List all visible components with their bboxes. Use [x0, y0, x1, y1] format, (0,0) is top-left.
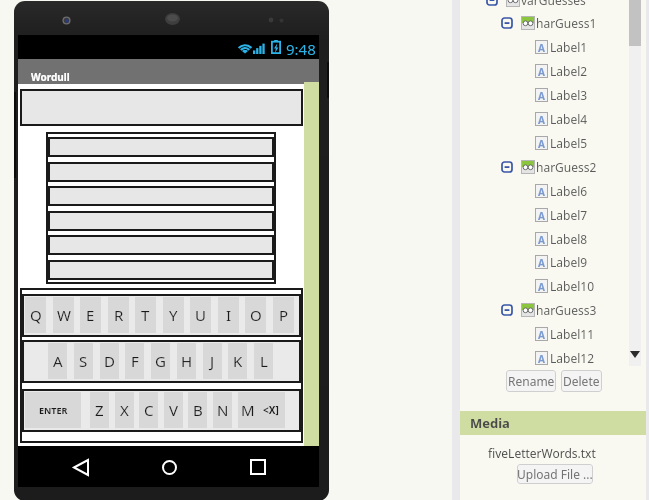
- staticText: Label4: [550, 111, 588, 127]
- button[interactable]: [511, 132, 649, 154]
- button[interactable]: [511, 60, 649, 82]
- staticText: B: [193, 400, 203, 420]
- staticText: R: [114, 305, 124, 325]
- button[interactable]: [497, 12, 637, 34]
- button[interactable]: [497, 299, 637, 321]
- staticText: A: [538, 328, 545, 340]
- button[interactable]: [511, 180, 649, 202]
- staticText: V: [169, 400, 179, 420]
- staticText: S: [79, 351, 88, 371]
- staticText: <X]: [263, 403, 279, 417]
- button[interactable]: F: [125, 343, 144, 379]
- staticText: harGuess1: [536, 15, 597, 31]
- button[interactable]: ENTER: [25, 392, 81, 428]
- button[interactable]: C: [139, 392, 158, 428]
- button[interactable]: [511, 204, 649, 226]
- staticText: W: [57, 305, 71, 325]
- staticText: A: [538, 209, 545, 221]
- staticText: A: [53, 351, 63, 371]
- staticText: Label9: [550, 254, 588, 270]
- button[interactable]: O: [245, 297, 266, 333]
- staticText: harGuess2: [536, 159, 597, 175]
- button[interactable]: I: [218, 297, 239, 333]
- staticText: K: [233, 351, 243, 371]
- button[interactable]: Q: [25, 297, 46, 333]
- button[interactable]: D: [100, 343, 119, 379]
- staticText: Wordull: [31, 70, 70, 84]
- button[interactable]: Wordull: [18, 59, 319, 84]
- staticText: F: [131, 351, 139, 371]
- button[interactable]: X: [115, 392, 134, 428]
- button[interactable]: J: [203, 343, 222, 379]
- button[interactable]: L: [254, 343, 273, 379]
- button[interactable]: S: [74, 343, 93, 379]
- button[interactable]: Rename: [506, 370, 556, 392]
- staticText: G: [155, 351, 166, 371]
- button[interactable]: [511, 36, 649, 58]
- button[interactable]: R: [108, 297, 129, 333]
- button[interactable]: H: [177, 343, 196, 379]
- button[interactable]: G: [151, 343, 170, 379]
- button[interactable]: [511, 275, 649, 297]
- staticText: Y: [169, 305, 178, 325]
- staticText: A: [538, 352, 545, 364]
- staticText: fiveLetterWords.txt: [488, 445, 596, 461]
- staticText: L: [260, 351, 268, 371]
- button[interactable]: A: [48, 343, 67, 379]
- staticText: I: [226, 305, 232, 325]
- staticText: Upload File ...: [517, 466, 593, 482]
- button[interactable]: [511, 251, 649, 273]
- button[interactable]: Y: [163, 297, 184, 333]
- staticText: Label10: [550, 278, 594, 294]
- staticText: A: [538, 137, 545, 149]
- button[interactable]: [511, 323, 649, 345]
- button[interactable]: U: [190, 297, 211, 333]
- button[interactable]: V: [164, 392, 183, 428]
- button[interactable]: [497, 156, 637, 178]
- staticText: X: [120, 400, 129, 420]
- button[interactable]: [511, 108, 649, 130]
- staticText: varGuesses: [521, 0, 586, 8]
- staticText: M: [241, 400, 255, 420]
- staticText: A: [538, 89, 545, 101]
- button[interactable]: Recents: [242, 451, 274, 483]
- button[interactable]: E: [80, 297, 101, 333]
- button[interactable]: N: [213, 392, 232, 428]
- button[interactable]: K: [228, 343, 247, 379]
- button[interactable]: [482, 0, 622, 11]
- staticText: H: [181, 351, 193, 371]
- button[interactable]: [511, 84, 649, 106]
- staticText: Label6: [550, 183, 588, 199]
- button[interactable]: Upload File ...: [517, 464, 593, 484]
- staticText: Label5: [550, 135, 588, 151]
- button[interactable]: [511, 347, 649, 369]
- button[interactable]: Back: [65, 451, 97, 483]
- button[interactable]: M: [238, 392, 257, 428]
- button[interactable]: P: [273, 297, 294, 333]
- button[interactable]: Delete: [561, 370, 602, 392]
- button[interactable]: [511, 228, 649, 250]
- staticText: A: [538, 113, 545, 125]
- staticText: Delete: [563, 373, 600, 389]
- button[interactable]: B: [188, 392, 207, 428]
- staticText: Label7: [550, 207, 588, 223]
- button[interactable]: Home: [153, 451, 185, 483]
- staticText: Label8: [550, 231, 588, 247]
- button[interactable]: T: [135, 297, 156, 333]
- staticText: J: [210, 351, 215, 371]
- staticText: E: [86, 305, 95, 325]
- staticText: C: [144, 400, 154, 420]
- button[interactable]: Z: [90, 392, 109, 428]
- staticText: Label1: [550, 39, 588, 55]
- button[interactable]: <X]: [256, 392, 285, 428]
- button[interactable]: W: [53, 297, 74, 333]
- staticText: T: [141, 305, 150, 325]
- staticText: Q: [30, 305, 42, 325]
